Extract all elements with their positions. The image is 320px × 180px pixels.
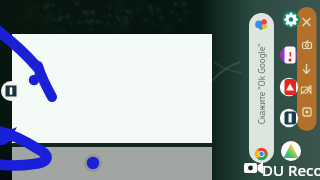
- staticText: Скажите "Ok Google": [255, 43, 266, 124]
- staticText: DU Recorder: [262, 160, 320, 180]
- button[interactable]: Ok Google assistant: [249, 13, 274, 163]
